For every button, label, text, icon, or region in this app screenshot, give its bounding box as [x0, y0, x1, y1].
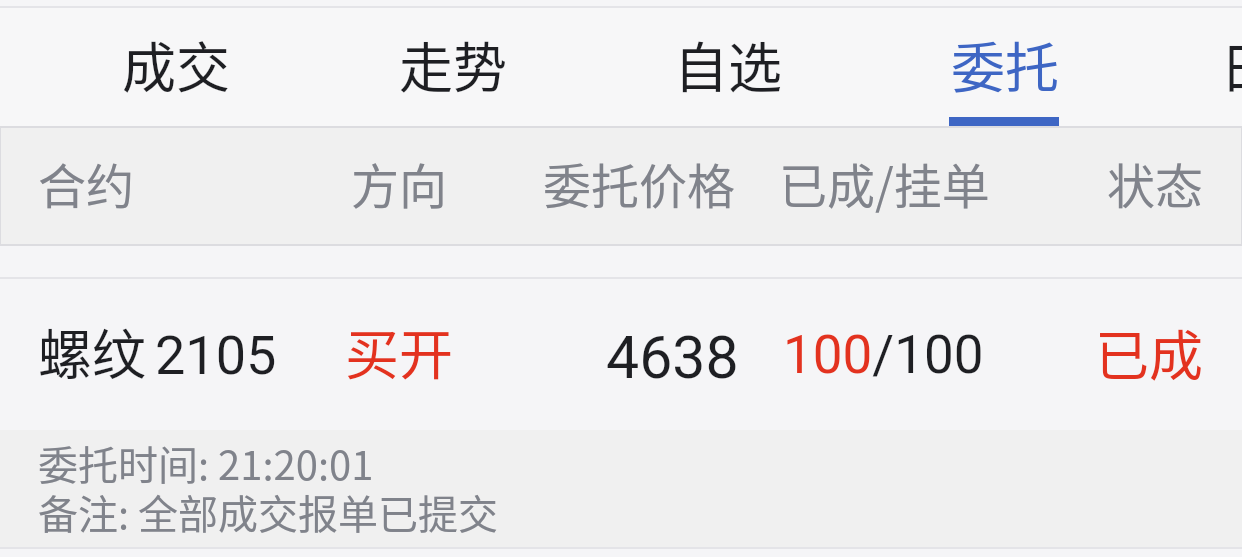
staticText: 合约: [38, 148, 135, 218]
staticText: 4638: [606, 323, 739, 392]
staticText: 自选: [674, 25, 782, 103]
staticText: 已成/挂单: [779, 148, 990, 218]
button[interactable]: 螺纹: [0, 279, 1242, 430]
staticText: 100/100: [783, 324, 984, 386]
staticText: 日内: [1220, 25, 1242, 103]
staticText: 螺纹: [38, 312, 146, 390]
staticText: 状态: [1107, 148, 1204, 218]
staticText: 备注: 全部成交报单已提交: [38, 483, 499, 541]
button[interactable]: 日内: [1136, 8, 1242, 119]
button[interactable]: 走势: [315, 8, 591, 119]
button[interactable]: 委托: [867, 8, 1143, 119]
staticText: 委托价格: [543, 148, 736, 218]
staticText: 成交: [122, 25, 230, 103]
staticText: 委托时间: 21:20:01: [38, 434, 374, 492]
button[interactable]: 成交: [38, 8, 314, 119]
staticText: 已成: [1095, 313, 1203, 391]
staticText: 2105: [155, 324, 277, 387]
staticText: 委托: [951, 25, 1059, 103]
staticText: 买开: [345, 312, 453, 390]
staticText: 方向: [351, 148, 448, 218]
staticText: 走势: [399, 25, 507, 103]
button[interactable]: 自选: [590, 8, 866, 119]
